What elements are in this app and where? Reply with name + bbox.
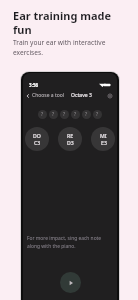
staticText: For more impact, sing each note along wi… xyxy=(27,235,112,249)
staticText: D3 xyxy=(67,139,74,146)
staticText: E3 xyxy=(101,139,107,146)
button[interactable]: ? xyxy=(60,110,69,119)
staticText: ? xyxy=(74,111,77,118)
button[interactable]: Settings xyxy=(105,91,115,101)
staticText: ? xyxy=(52,111,55,118)
staticText: C3 xyxy=(34,139,41,146)
button[interactable]: DO xyxy=(25,127,49,151)
button[interactable]: Octave 3 xyxy=(71,92,92,99)
button[interactable]: ? xyxy=(82,110,91,119)
staticText: 3:56 xyxy=(29,82,39,88)
button[interactable]: Back xyxy=(23,91,32,100)
button[interactable]: RE xyxy=(58,127,82,151)
button[interactable]: ? xyxy=(49,110,58,119)
staticText: MI xyxy=(100,132,107,139)
staticText: ? xyxy=(63,111,66,118)
button[interactable]: ? xyxy=(38,110,47,119)
staticText: RE xyxy=(67,132,74,139)
staticText: DO xyxy=(33,132,41,139)
staticText: Ear training made fun xyxy=(13,8,129,37)
staticText: Train your ear with interactive exercise… xyxy=(13,38,129,57)
button[interactable]: Play xyxy=(60,272,81,293)
button[interactable]: ? xyxy=(93,110,102,119)
staticText: ? xyxy=(96,111,99,118)
button[interactable]: Choose a tool xyxy=(32,92,65,99)
staticText: ? xyxy=(41,111,44,118)
staticText: ? xyxy=(85,111,88,118)
button[interactable]: MI xyxy=(91,127,115,151)
button[interactable]: ? xyxy=(71,110,80,119)
